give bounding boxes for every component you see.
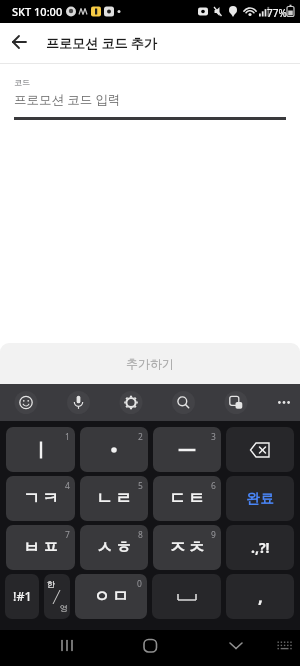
button[interactable]: [270, 388, 298, 417]
button[interactable]: ㄱㅋ: [6, 476, 75, 521]
button[interactable]: [12, 388, 40, 417]
button[interactable]: ㅇㅁ: [75, 574, 147, 619]
staticText: 영: [60, 603, 68, 613]
button[interactable]: [222, 388, 250, 417]
staticText: 9: [211, 529, 216, 541]
staticText: ㅅㅎ: [95, 537, 133, 558]
staticText: 4: [65, 480, 70, 492]
button[interactable]: 2: [80, 427, 148, 472]
staticText: 완료: [246, 490, 274, 507]
staticText: SKT 10:00: [12, 4, 63, 19]
button[interactable]: [200, 630, 300, 666]
button[interactable]: ㅂㅍ: [6, 525, 75, 570]
staticText: ㄷㅌ: [168, 488, 206, 509]
staticText: !#1: [13, 588, 32, 605]
staticText: 추가하기: [126, 356, 174, 371]
button[interactable]: !#1: [5, 574, 39, 619]
staticText: 5: [138, 480, 143, 492]
button[interactable]: 추가하기: [0, 343, 300, 384]
button[interactable]: [100, 630, 200, 666]
button[interactable]: [0, 23, 40, 63]
staticText: 프로모션 코드 입력: [14, 91, 121, 108]
button[interactable]: ㅈㅊ: [153, 525, 221, 570]
staticText: 한: [47, 579, 55, 589]
staticText: 프로모션 코드 추가: [46, 34, 157, 52]
button[interactable]: ㄷㅌ: [153, 476, 221, 521]
staticText: ㅇㅁ: [92, 586, 130, 607]
button[interactable]: 한: [44, 574, 70, 619]
button[interactable]: ,: [226, 574, 294, 619]
button[interactable]: [0, 630, 100, 666]
button[interactable]: ㄴㄹ: [80, 476, 148, 521]
button[interactable]: .,?!: [226, 525, 294, 570]
staticText: ㄱㅋ: [22, 488, 60, 509]
button[interactable]: 1: [6, 427, 75, 472]
staticText: 3: [211, 431, 216, 443]
staticText: 0: [137, 578, 142, 590]
staticText: 코드: [14, 77, 30, 87]
staticText: 8: [138, 529, 143, 541]
staticText: 1: [65, 431, 70, 443]
button[interactable]: ㅅㅎ: [80, 525, 148, 570]
button[interactable]: [65, 388, 93, 417]
staticText: 6: [211, 480, 216, 492]
staticText: ㄴㄹ: [95, 488, 133, 509]
staticText: 2: [138, 431, 143, 443]
button[interactable]: [117, 388, 145, 417]
staticText: 77%: [267, 6, 287, 20]
staticText: ,: [258, 585, 263, 608]
staticText: ㅈㅊ: [168, 537, 206, 558]
button[interactable]: 완료: [226, 476, 294, 521]
button[interactable]: [170, 388, 198, 417]
staticText: .,?!: [251, 538, 270, 557]
button[interactable]: [152, 574, 221, 619]
staticText: ㅂㅍ: [22, 537, 60, 558]
staticText: 7: [65, 529, 70, 541]
button[interactable]: 코드: [0, 64, 300, 120]
button[interactable]: [226, 427, 294, 472]
button[interactable]: 3: [153, 427, 221, 472]
